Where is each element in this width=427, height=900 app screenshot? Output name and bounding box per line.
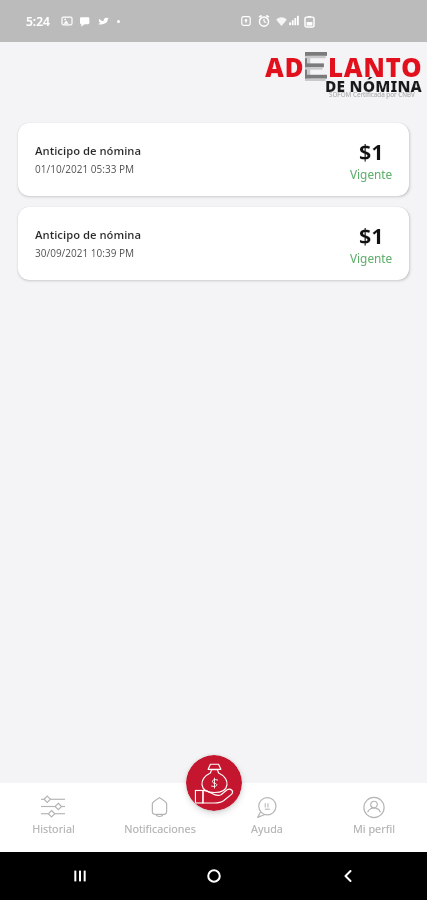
button[interactable]: Anticipo de nómina <box>18 123 409 196</box>
button[interactable]: Ayuda <box>213 783 320 852</box>
button[interactable]: Mi perfil <box>320 783 427 852</box>
staticText: Vigente <box>350 166 393 182</box>
staticText: DE NÓMINA <box>325 75 422 96</box>
staticText: $1 <box>359 221 384 250</box>
staticText: SOFOM Certificada por CNBV <box>329 90 415 99</box>
button[interactable]: Anticipo de nómina <box>18 207 409 280</box>
staticText: 01/10/2021 05:33 PM <box>35 162 135 176</box>
staticText: 5:24 <box>26 13 50 29</box>
button[interactable]: Recents <box>70 867 88 885</box>
staticText: Vigente <box>350 250 393 266</box>
staticText: AD <box>265 49 305 84</box>
button[interactable]: Solicitar adelanto <box>186 755 242 811</box>
staticText: Notificaciones <box>124 821 196 836</box>
button[interactable]: Back <box>339 867 357 885</box>
staticText: LANTO <box>328 49 423 84</box>
staticText: Anticipo de nómina <box>35 143 142 158</box>
staticText: Historial <box>32 821 75 836</box>
button[interactable]: Historial <box>0 783 106 852</box>
button[interactable]: Home <box>205 867 223 885</box>
staticText: Ayuda <box>251 821 283 836</box>
staticText: Mi perfil <box>353 821 395 836</box>
staticText: $1 <box>359 137 384 166</box>
staticText: Anticipo de nómina <box>35 227 142 242</box>
staticText: 30/09/2021 10:39 PM <box>35 246 135 260</box>
button[interactable]: Notificaciones <box>106 783 213 852</box>
